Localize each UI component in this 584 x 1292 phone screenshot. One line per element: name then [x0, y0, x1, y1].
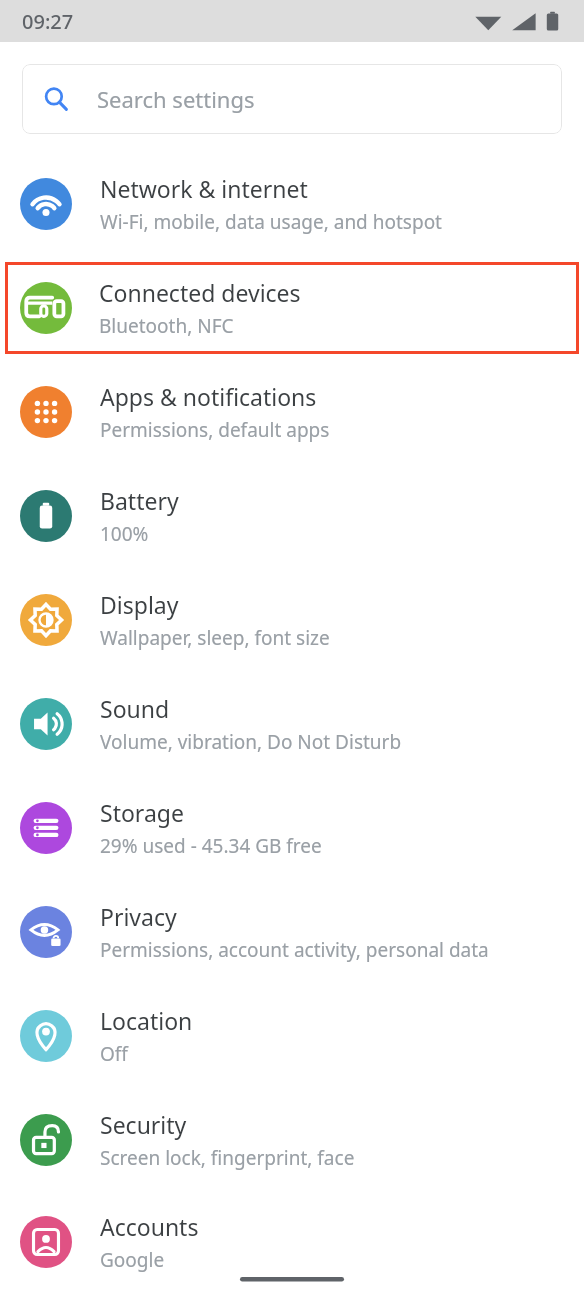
staticText: Volume, vibration, Do Not Disturb	[100, 729, 402, 755]
staticText: 29% used - 45.34 GB free	[100, 833, 322, 859]
staticText: Search settings	[97, 84, 255, 114]
button[interactable]: Battery	[0, 464, 584, 568]
button[interactable]: Network & internet	[0, 152, 584, 256]
button[interactable]: Privacy	[0, 880, 584, 984]
staticText: Accounts	[100, 1211, 199, 1242]
staticText: Battery	[100, 485, 179, 516]
staticText: Network & internet	[100, 173, 308, 204]
staticText: Permissions, account activity, personal …	[100, 937, 489, 963]
staticText: Google	[100, 1247, 165, 1273]
button[interactable]: Sound	[0, 672, 584, 776]
staticText: Bluetooth, NFC	[99, 313, 234, 339]
staticText: Off	[100, 1041, 128, 1067]
staticText: Security	[100, 1109, 187, 1140]
button[interactable]: Accounts	[0, 1192, 584, 1292]
button[interactable]: Security	[0, 1088, 584, 1192]
staticText: Display	[100, 589, 179, 620]
staticText: Screen lock, fingerprint, face	[100, 1145, 355, 1171]
staticText: Sound	[100, 693, 170, 724]
staticText: 100%	[100, 521, 149, 547]
staticText: Privacy	[100, 901, 177, 932]
staticText: Location	[100, 1005, 193, 1036]
staticText: Wallpaper, sleep, font size	[100, 625, 330, 651]
button[interactable]: Display	[0, 568, 584, 672]
staticText: 09:27	[22, 8, 74, 35]
button[interactable]: Search settings	[22, 64, 562, 134]
button[interactable]: Apps & notifications	[0, 360, 584, 464]
staticText: Connected devices	[99, 277, 301, 308]
button[interactable]: Storage	[0, 776, 584, 880]
staticText: Apps & notifications	[100, 381, 317, 412]
staticText: Wi-Fi, mobile, data usage, and hotspot	[100, 209, 442, 235]
staticText: Storage	[100, 797, 184, 828]
button[interactable]: Location	[0, 984, 584, 1088]
staticText: Permissions, default apps	[100, 417, 330, 443]
button[interactable]: Connected devices	[5, 262, 579, 354]
